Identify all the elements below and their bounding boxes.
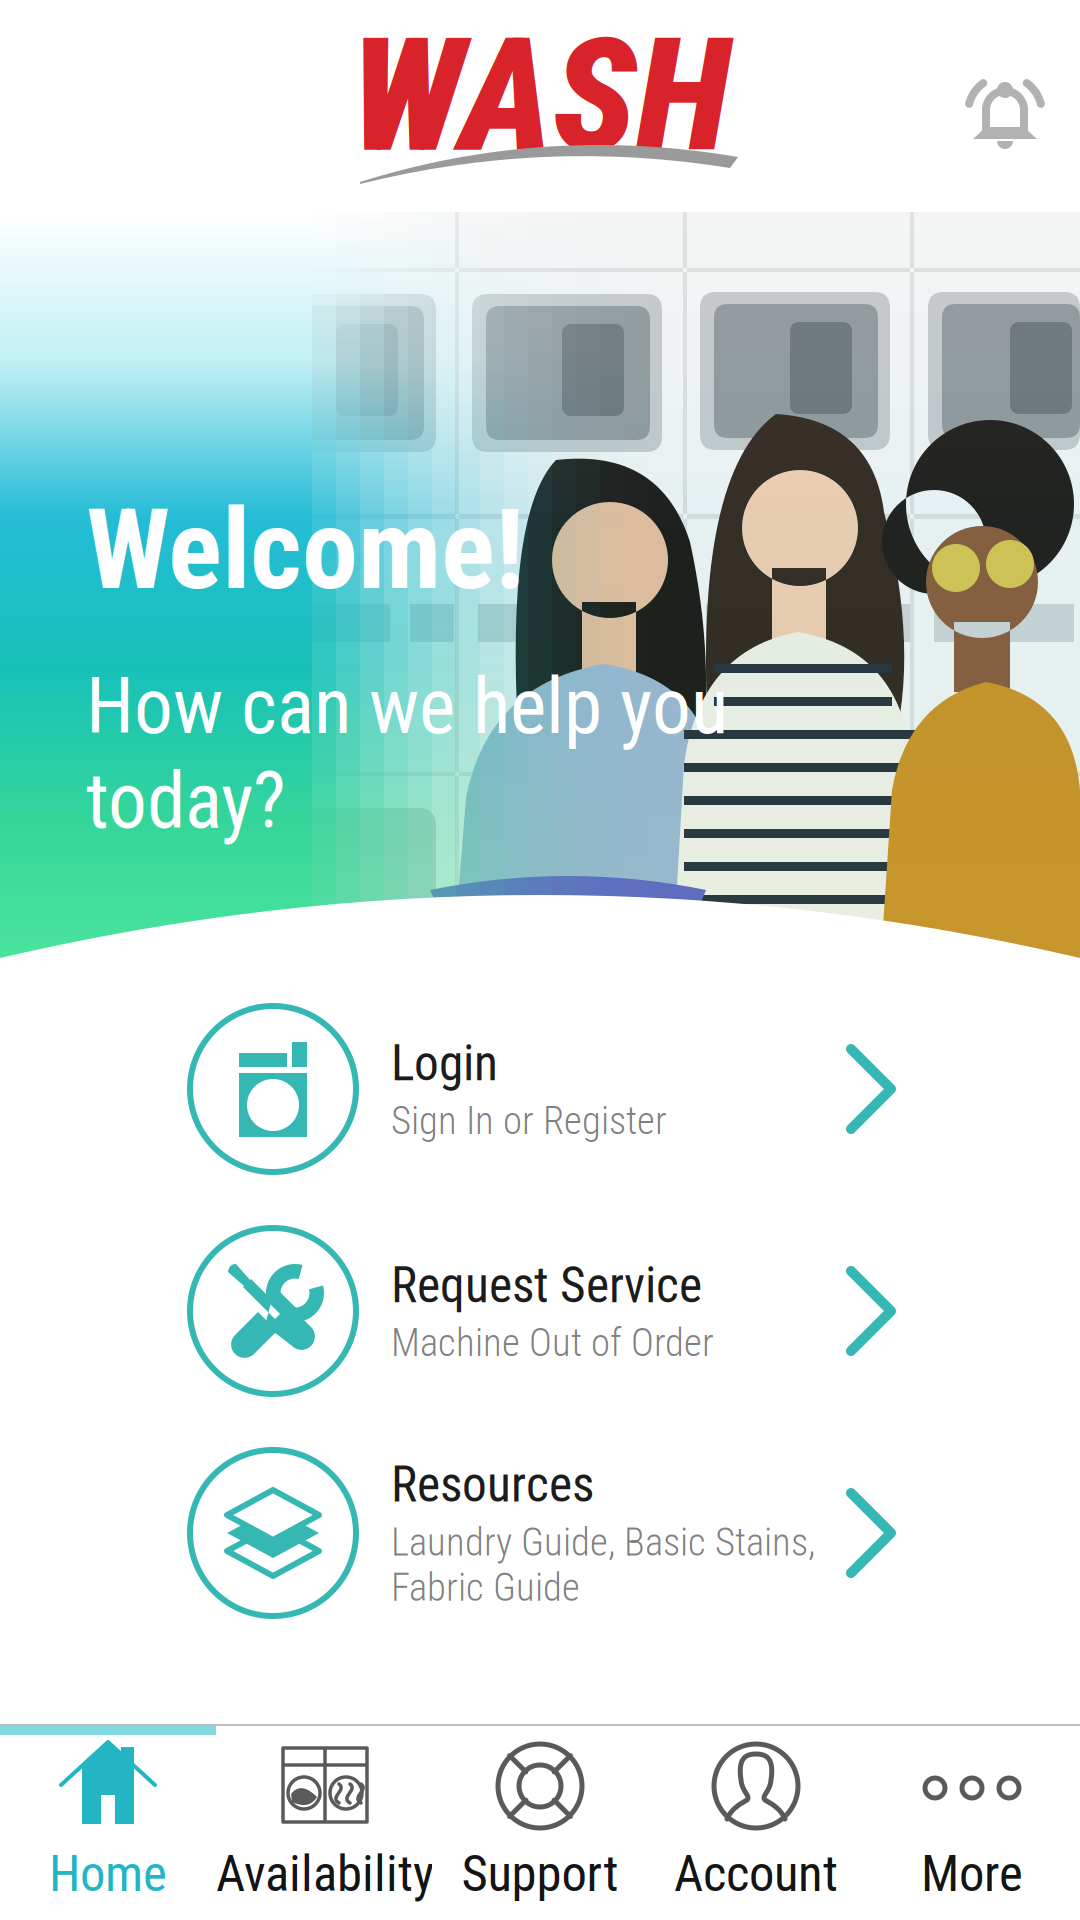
button[interactable]: Notifications bbox=[930, 38, 1080, 178]
button[interactable]: Login bbox=[0, 978, 1080, 1200]
staticText: Login bbox=[391, 1034, 498, 1092]
staticText: Request Service bbox=[391, 1256, 702, 1314]
staticText: Support bbox=[461, 1844, 618, 1903]
staticText: Laundry Guide, Basic Stains, bbox=[391, 1520, 815, 1565]
staticText: Machine Out of Order bbox=[391, 1320, 714, 1365]
staticText: Account bbox=[674, 1844, 838, 1903]
button[interactable]: Resources bbox=[0, 1422, 1080, 1644]
button[interactable]: Request Service bbox=[0, 1200, 1080, 1422]
button[interactable]: Home bbox=[0, 1726, 216, 1920]
button[interactable]: More bbox=[864, 1726, 1080, 1920]
staticText: More bbox=[921, 1844, 1023, 1903]
staticText: Welcome! bbox=[86, 484, 524, 615]
button[interactable]: Account bbox=[648, 1726, 864, 1920]
staticText: Resources bbox=[391, 1456, 594, 1514]
staticText: Fabric Guide bbox=[391, 1565, 580, 1610]
button[interactable]: Support bbox=[432, 1726, 648, 1920]
staticText: Sign In or Register bbox=[391, 1098, 667, 1143]
button[interactable]: Availability bbox=[216, 1726, 432, 1920]
staticText: How can we help you bbox=[86, 661, 728, 752]
staticText: today? bbox=[86, 756, 286, 846]
staticText: Home bbox=[49, 1844, 167, 1903]
staticText: Availability bbox=[216, 1844, 434, 1903]
staticText: WASH bbox=[350, 4, 729, 188]
